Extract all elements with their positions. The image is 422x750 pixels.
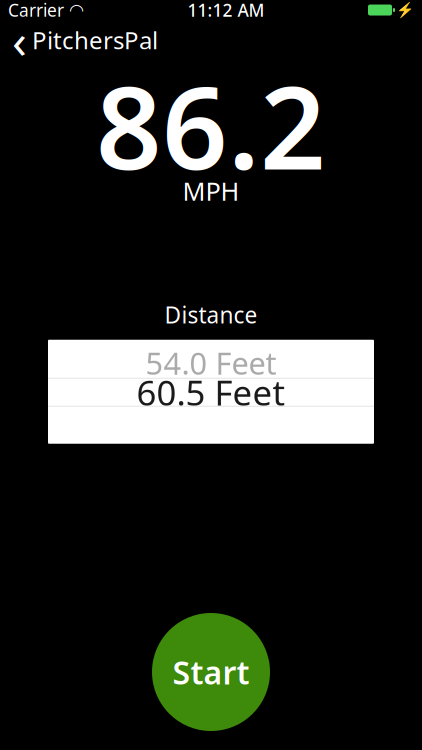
button[interactable]: ‹ (0, 20, 170, 60)
button[interactable]: 60.5 Feet (48, 379, 374, 406)
staticText: MPH (182, 174, 239, 208)
button[interactable]: 54.0 Feet (48, 340, 374, 378)
staticText: Carrier (8, 0, 64, 21)
staticText: ‹ (12, 8, 27, 72)
button[interactable]: Start (152, 613, 270, 731)
staticText: 54.0 Feet (145, 342, 276, 383)
staticText: 86.2 (96, 49, 326, 201)
staticText: 11:12 AM (187, 0, 264, 21)
staticText: ⚡ (396, 2, 414, 18)
staticText: Start (172, 651, 249, 693)
staticText: ◠ (69, 0, 84, 20)
staticText: 60.5 Feet (136, 369, 285, 415)
staticText: Distance (164, 300, 257, 330)
staticText: PitchersPal (32, 24, 158, 56)
